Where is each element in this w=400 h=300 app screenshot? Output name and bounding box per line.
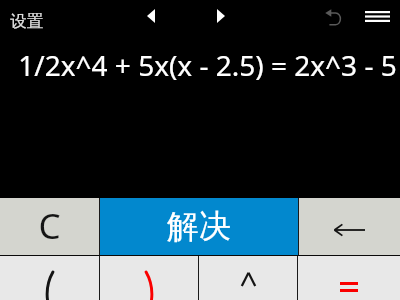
button[interactable]: Undo bbox=[321, 5, 345, 29]
staticText: C bbox=[38, 202, 61, 250]
button[interactable]: Next bbox=[211, 3, 231, 29]
button[interactable]: Close parenthesis bbox=[100, 256, 198, 300]
button[interactable]: C bbox=[0, 198, 99, 255]
staticText: 1/2x^4 + 5x(x - 2.5) = 2x^3 - 5 bbox=[18, 46, 397, 84]
button[interactable]: Equals bbox=[298, 256, 400, 300]
button[interactable]: Open parenthesis bbox=[0, 256, 99, 300]
button[interactable]: Backspace bbox=[299, 198, 400, 255]
button[interactable]: Previous bbox=[141, 3, 161, 29]
button[interactable]: 设置 bbox=[10, 11, 43, 32]
staticText: 设置 bbox=[10, 11, 43, 32]
button[interactable]: 解决 bbox=[100, 198, 298, 255]
button[interactable]: Power bbox=[199, 256, 297, 300]
staticText: 解决 bbox=[167, 206, 231, 246]
button[interactable]: Menu bbox=[360, 3, 394, 29]
